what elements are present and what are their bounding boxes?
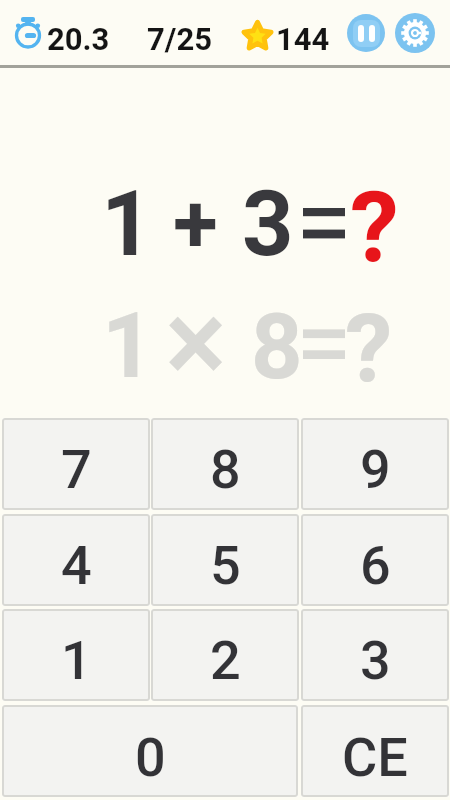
staticText: 5: [210, 534, 241, 597]
staticText: ×: [165, 275, 227, 411]
staticText: 8: [210, 438, 241, 501]
staticText: 7/25: [147, 21, 212, 57]
staticText: 144: [276, 21, 330, 57]
button[interactable]: 8: [151, 418, 299, 510]
staticText: 1: [102, 294, 154, 399]
staticText: 9: [360, 438, 391, 501]
button[interactable]: 7: [2, 418, 150, 510]
button[interactable]: 9: [301, 418, 449, 510]
staticText: +: [173, 176, 218, 272]
staticText: 7: [61, 438, 92, 501]
button[interactable]: 0: [2, 705, 298, 797]
button[interactable]: 6: [301, 514, 449, 606]
button[interactable]: 4: [2, 514, 150, 606]
staticText: 20.3: [47, 21, 110, 57]
button[interactable]: [347, 14, 385, 52]
staticText: 1: [61, 629, 92, 692]
staticText: 0: [135, 726, 166, 789]
staticText: CE: [342, 726, 408, 789]
staticText: 1: [101, 172, 153, 277]
button[interactable]: [395, 13, 435, 53]
button[interactable]: 1: [2, 609, 150, 701]
button[interactable]: 2: [151, 609, 299, 701]
button[interactable]: 3: [301, 609, 449, 701]
staticText: ?: [345, 293, 393, 404]
button[interactable]: 5: [151, 514, 299, 606]
staticText: ?: [350, 170, 399, 285]
staticText: 3: [360, 629, 391, 692]
staticText: 3: [242, 172, 294, 277]
staticText: 2: [210, 629, 241, 692]
staticText: 4: [61, 534, 92, 597]
button[interactable]: CE: [301, 705, 449, 797]
staticText: 8: [251, 295, 303, 400]
staticText: 6: [360, 534, 391, 597]
